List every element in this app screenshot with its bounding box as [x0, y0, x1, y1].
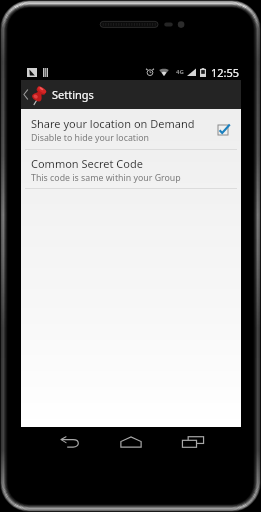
button[interactable]: Share your location on Demand: [21, 113, 241, 149]
button[interactable]: Navigate up: [21, 80, 46, 109]
staticText: 4G: [176, 68, 184, 76]
staticText: Disable to hide your location: [31, 132, 150, 144]
button[interactable]: Recent apps: [177, 427, 208, 457]
staticText: Settings: [52, 87, 94, 102]
button[interactable]: Back: [54, 427, 85, 457]
button[interactable]: Common Secret Code: [21, 150, 241, 188]
staticText: Share your location on Demand: [31, 116, 195, 131]
button[interactable]: Share location toggle: [212, 119, 234, 141]
staticText: 12:55: [211, 65, 240, 80]
staticText: Common Secret Code: [31, 156, 143, 171]
button[interactable]: Home: [115, 427, 146, 457]
staticText: This code is same within your Group: [31, 172, 181, 184]
